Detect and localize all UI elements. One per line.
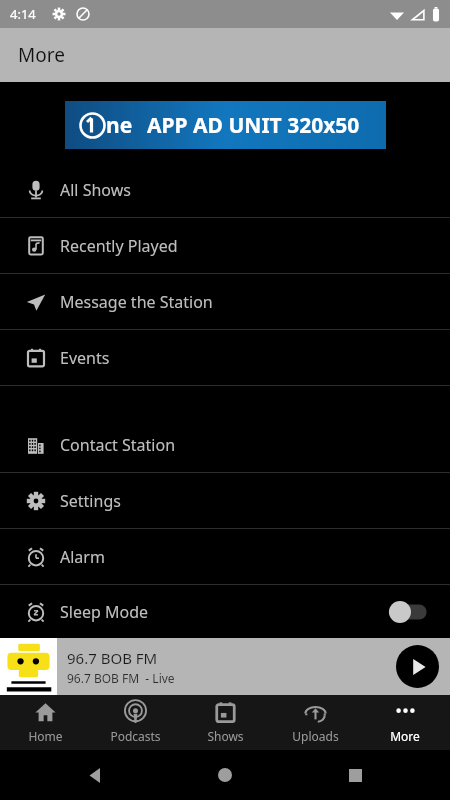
button[interactable]: Alarm <box>0 529 450 584</box>
button[interactable]: Home <box>213 763 237 787</box>
button[interactable]: Events <box>0 330 450 385</box>
staticText: More <box>18 42 65 68</box>
button[interactable]: Podcasts <box>90 695 180 750</box>
button[interactable]: Message the Station <box>0 274 450 329</box>
staticText: Recently Played <box>60 235 434 257</box>
staticText: APP AD UNIT 320x50 <box>147 111 360 140</box>
staticText: 96.7 BOB FM <box>67 648 158 668</box>
staticText: More <box>390 728 420 744</box>
button[interactable]: All Shows <box>0 162 450 217</box>
button[interactable]: Play <box>396 645 439 688</box>
staticText: Sleep Mode <box>60 601 388 623</box>
button[interactable]: Shows <box>180 695 270 750</box>
staticText: Contact Station <box>60 434 434 456</box>
button[interactable]: Recently Played <box>0 218 450 273</box>
staticText: 4:14 <box>10 5 36 23</box>
staticText: Alarm <box>60 546 434 568</box>
staticText: Uploads <box>292 728 339 744</box>
button[interactable]: Recent apps <box>344 764 366 786</box>
staticText: Message the Station <box>60 291 434 313</box>
button[interactable]: Home <box>0 695 90 750</box>
button[interactable]: More <box>360 695 450 750</box>
staticText: Home <box>28 728 63 744</box>
staticText: Shows <box>207 728 244 744</box>
button[interactable]: Advertisement <box>65 101 386 149</box>
button[interactable]: 96.7 BOB FM <box>0 638 450 695</box>
staticText: All Shows <box>60 179 434 201</box>
staticText: Podcasts <box>110 728 161 744</box>
button[interactable]: Settings <box>0 473 450 528</box>
button[interactable]: Back <box>84 764 106 786</box>
button[interactable]: Contact Station <box>0 417 450 472</box>
button[interactable]: Uploads <box>270 695 360 750</box>
staticText: Settings <box>60 490 434 512</box>
button[interactable]: Sleep Mode <box>0 585 450 638</box>
staticText: 96.7 BOB FM - Live <box>67 670 175 686</box>
staticText: Events <box>60 347 434 369</box>
staticText: ne <box>106 111 133 140</box>
button[interactable]: Sleep Mode toggle <box>388 600 434 624</box>
